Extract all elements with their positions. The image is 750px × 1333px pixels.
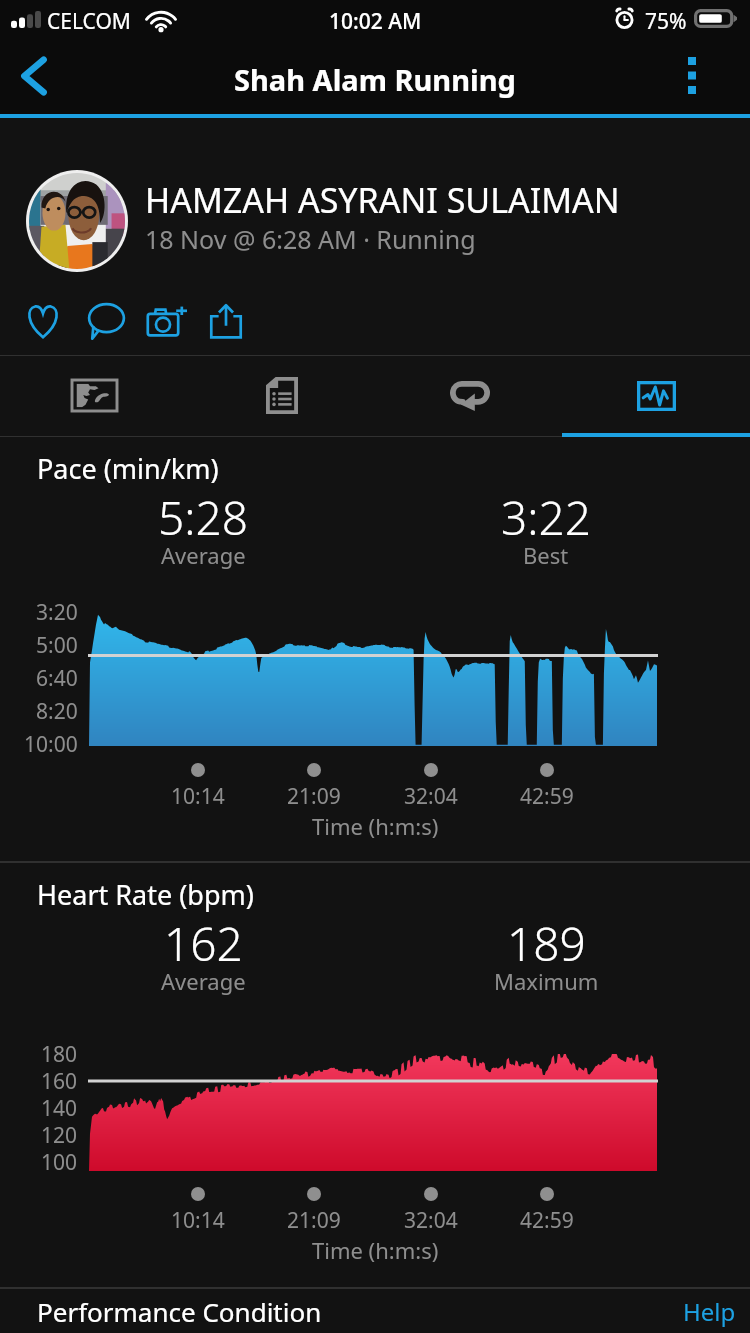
staticText: 120	[41, 1121, 78, 1149]
staticText: Pace (min/km)	[37, 450, 219, 487]
staticText: 140	[41, 1094, 78, 1122]
staticText: 180	[41, 1040, 78, 1068]
staticText: Performance Condition	[37, 1294, 322, 1329]
button[interactable]: Back	[0, 44, 68, 114]
staticText: 32:04	[404, 782, 458, 811]
staticText: HAMZAH ASYRANI SULAIMAN	[145, 177, 620, 223]
staticText: CELCOM	[47, 7, 131, 36]
staticText: 32:04	[404, 1206, 458, 1235]
staticText: 18 Nov @ 6:28 AM · Running	[145, 222, 476, 256]
button[interactable]: More options	[658, 44, 728, 114]
staticText: Time (h:m:s)	[312, 1235, 439, 1265]
button[interactable]: HAMZAH ASYRANI SULAIMAN	[0, 119, 750, 290]
staticText: 42:59	[520, 782, 574, 811]
staticText: 5:28	[158, 486, 249, 549]
staticText: 5:00	[36, 631, 78, 659]
button[interactable]: Like	[13, 290, 73, 352]
staticText: 189	[507, 912, 586, 975]
staticText: 100	[41, 1148, 78, 1176]
staticText: 21:09	[287, 1206, 341, 1235]
staticText: 10:14	[171, 1206, 225, 1235]
staticText: 75%	[645, 7, 687, 36]
staticText: 10:00	[24, 730, 78, 758]
button[interactable]: Charts	[562, 356, 750, 437]
button[interactable]: Add photo	[137, 290, 197, 352]
staticText: 21:09	[287, 782, 341, 811]
staticText: 8:20	[36, 697, 78, 725]
staticText: Maximum	[494, 966, 599, 996]
staticText: Average	[161, 540, 246, 570]
button[interactable]: Laps	[376, 356, 564, 437]
button[interactable]: Comment	[76, 290, 136, 352]
staticText: 10:14	[171, 782, 225, 811]
staticText: Average	[161, 966, 246, 996]
staticText: Help	[683, 1295, 736, 1327]
staticText: Heart Rate (bpm)	[37, 876, 254, 913]
staticText: 3:22	[501, 486, 592, 549]
staticText: 10:02 AM	[329, 7, 422, 36]
button[interactable]: Share	[196, 290, 256, 352]
staticText: Best	[523, 540, 569, 570]
button[interactable]: Details	[188, 356, 376, 437]
staticText: 3:20	[36, 598, 78, 626]
staticText: 162	[164, 912, 243, 975]
staticText: Shah Alam Running	[234, 60, 516, 99]
button[interactable]: Help	[669, 1289, 750, 1333]
staticText: 160	[41, 1067, 78, 1095]
button[interactable]: Map	[0, 356, 188, 437]
staticText: Time (h:m:s)	[312, 811, 439, 841]
staticText: 6:40	[36, 664, 78, 692]
staticText: 42:59	[520, 1206, 574, 1235]
